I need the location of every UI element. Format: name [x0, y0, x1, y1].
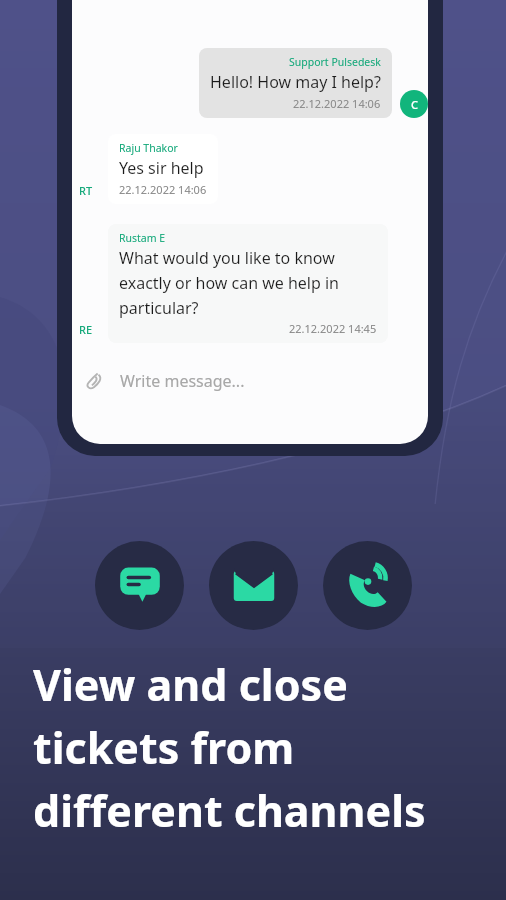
staticText: C	[411, 97, 418, 112]
button[interactable]: RT	[72, 176, 100, 204]
button[interactable]: Raju Thakor	[108, 134, 218, 204]
button[interactable]: Attach file	[72, 359, 428, 403]
staticText: RT	[79, 183, 93, 198]
staticText: 22.12.2022 14:06	[293, 96, 381, 111]
button[interactable]: Rustam E	[108, 224, 388, 343]
staticText: Hello! How may I help?	[210, 71, 381, 93]
staticText: What would you like to know exactly or h…	[119, 247, 377, 318]
button[interactable]: Chat messages	[95, 541, 184, 630]
button[interactable]: RE	[72, 315, 100, 343]
button[interactable]: Support Pulsedesk	[199, 48, 392, 118]
staticText: RE	[79, 322, 93, 337]
staticText: Write message...	[120, 370, 245, 392]
staticText: Raju Thakor	[119, 141, 178, 155]
button[interactable]: Phone calls	[323, 541, 412, 630]
staticText: Rustam E	[119, 231, 166, 245]
staticText: View and close tickets from different ch…	[33, 655, 426, 840]
staticText: 22.12.2022 14:45	[289, 321, 377, 336]
other: Attach file	[84, 370, 106, 392]
staticText: 22.12.2022 14:06	[119, 182, 207, 197]
staticText: Support Pulsedesk	[289, 55, 381, 69]
button[interactable]: Email	[209, 541, 298, 630]
button[interactable]: C	[400, 90, 428, 118]
staticText: Yes sir help	[119, 157, 204, 179]
